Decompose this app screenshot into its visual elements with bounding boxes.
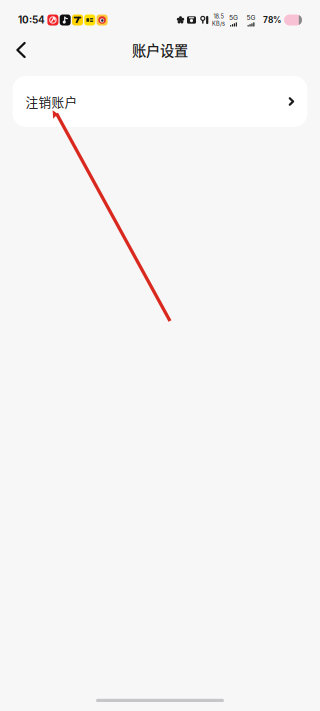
- staticText: 5G: [229, 13, 238, 22]
- staticText: 注销账户: [25, 92, 77, 111]
- button[interactable]: Back: [4, 34, 38, 66]
- staticText: 10:54: [18, 14, 45, 26]
- staticText: 78%: [263, 15, 281, 25]
- staticText: 账户设置: [132, 40, 188, 60]
- staticText: 18.5: [213, 13, 223, 20]
- staticText: 5G: [246, 13, 255, 22]
- button[interactable]: 注销账户: [12, 76, 307, 127]
- staticText: KB/s: [212, 20, 225, 27]
